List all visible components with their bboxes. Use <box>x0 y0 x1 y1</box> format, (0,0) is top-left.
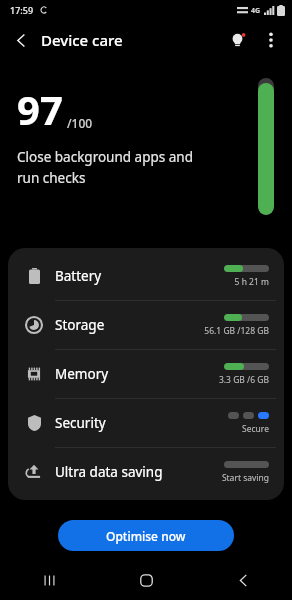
staticText: Ultra data saving <box>55 463 163 481</box>
button[interactable]: Memory <box>8 350 284 398</box>
button[interactable]: Optimise now <box>58 520 234 551</box>
staticText: Storage <box>55 316 105 334</box>
button[interactable]: Home <box>98 560 195 600</box>
staticText: /100 <box>67 115 93 131</box>
staticText: Start saving <box>221 472 269 484</box>
staticText: Secure <box>242 423 269 435</box>
staticText: 5 h 21 m <box>234 276 269 288</box>
staticText: 3.3 GB /6 GB <box>218 374 269 386</box>
staticText: Battery <box>55 267 102 285</box>
button[interactable]: Back <box>195 560 292 600</box>
staticText: 17:59 <box>10 4 34 16</box>
button[interactable]: Security <box>8 399 284 447</box>
button[interactable]: Tips <box>220 23 254 57</box>
staticText: 56.1 GB /128 GB <box>204 325 269 337</box>
button[interactable]: Back <box>4 23 38 57</box>
staticText: Optimise now <box>106 528 186 544</box>
staticText: Close background apps and run checks <box>17 148 193 187</box>
button[interactable]: Recent apps <box>0 560 98 600</box>
button[interactable]: Ultra data saving <box>8 448 284 496</box>
button[interactable]: Battery <box>8 252 284 300</box>
staticText: Memory <box>55 365 109 383</box>
staticText: Device care <box>41 30 123 50</box>
button[interactable]: More options <box>254 23 288 57</box>
staticText: 4G <box>251 6 261 16</box>
staticText: 97 <box>17 82 63 136</box>
button[interactable]: Storage <box>8 301 284 349</box>
staticText: Security <box>55 414 106 432</box>
